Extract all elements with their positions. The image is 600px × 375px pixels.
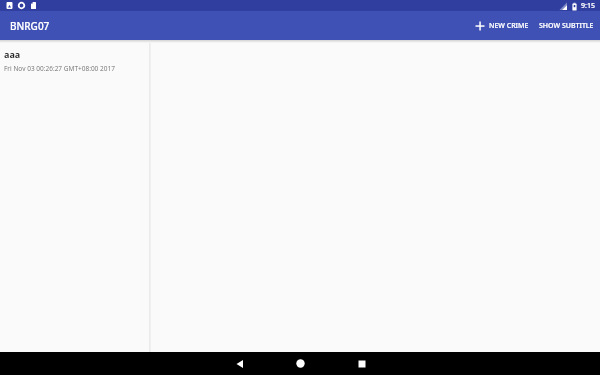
button[interactable]: aaa <box>0 43 149 79</box>
button[interactable]: SHOW SUBTITLE <box>532 11 600 40</box>
button[interactable] <box>350 352 373 375</box>
button[interactable] <box>289 352 312 375</box>
staticText: NEW CRIME <box>489 21 529 31</box>
button[interactable] <box>228 352 251 375</box>
staticText: aaa <box>4 48 21 60</box>
staticText: BNRG07 <box>10 19 50 33</box>
button[interactable]: NEW CRIME <box>471 11 532 40</box>
staticText: SHOW SUBTITLE <box>539 21 594 31</box>
staticText: Fri Nov 03 00:26:27 GMT+08:00 2017 <box>4 64 115 73</box>
staticText: 9:15 <box>581 1 595 11</box>
